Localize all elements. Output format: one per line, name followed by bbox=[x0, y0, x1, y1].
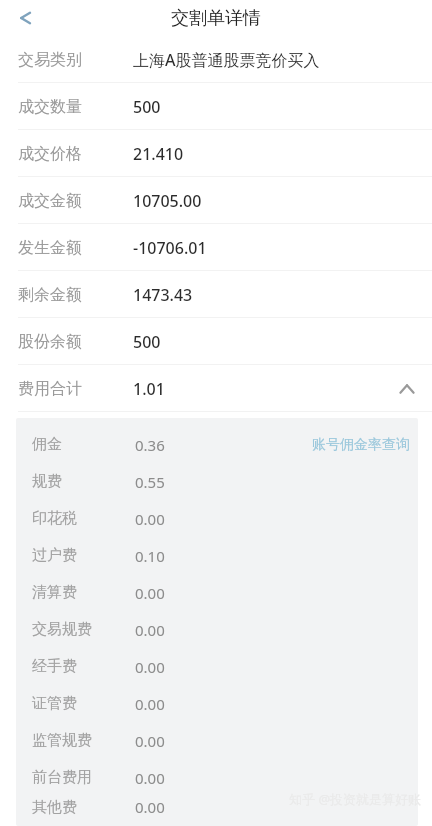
staticText: 0.55 bbox=[135, 472, 165, 492]
button[interactable]: 其他费 bbox=[16, 796, 418, 818]
button[interactable]: 账号佣金率查询 bbox=[312, 436, 410, 454]
staticText: 经手费 bbox=[32, 657, 77, 676]
button[interactable]: 剩余金额 bbox=[0, 271, 432, 318]
button[interactable]: 监管规费 bbox=[16, 722, 418, 759]
button[interactable]: 过户费 bbox=[16, 537, 418, 574]
staticText: 0.00 bbox=[135, 768, 165, 788]
staticText: 0.00 bbox=[135, 620, 165, 640]
staticText: 监管规费 bbox=[32, 731, 92, 750]
staticText: 发生金额 bbox=[18, 238, 82, 258]
button[interactable]: 股份余额 bbox=[0, 318, 432, 365]
staticText: 0.00 bbox=[135, 657, 165, 677]
button[interactable]: 印花税 bbox=[16, 500, 418, 537]
staticText: 0.36 bbox=[135, 435, 165, 455]
staticText: 账号佣金率查询 bbox=[312, 436, 410, 454]
staticText: 10705.00 bbox=[133, 190, 202, 212]
staticText: -10706.01 bbox=[133, 237, 207, 259]
staticText: 其他费 bbox=[32, 798, 77, 817]
staticText: 1.01 bbox=[133, 378, 165, 400]
staticText: 0.00 bbox=[135, 583, 165, 603]
button[interactable]: 前台费用 bbox=[16, 759, 418, 796]
staticText: 500 bbox=[133, 96, 161, 118]
staticText: 0.00 bbox=[135, 731, 165, 751]
staticText: 1473.43 bbox=[133, 284, 193, 306]
staticText: 剩余金额 bbox=[18, 285, 82, 305]
staticText: 成交金额 bbox=[18, 191, 82, 211]
staticText: 费用合计 bbox=[18, 379, 82, 399]
button[interactable]: 交易类别 bbox=[0, 36, 432, 83]
staticText: 印花税 bbox=[32, 509, 77, 528]
staticText: 佣金 bbox=[32, 435, 62, 454]
staticText: 交易类别 bbox=[18, 50, 82, 70]
button[interactable]: 发生金额 bbox=[0, 224, 432, 271]
staticText: 成交价格 bbox=[18, 144, 82, 164]
button[interactable]: 费用合计 bbox=[0, 365, 432, 412]
button[interactable]: 成交数量 bbox=[0, 83, 432, 130]
staticText: 前台费用 bbox=[32, 768, 92, 787]
button[interactable]: 经手费 bbox=[16, 648, 418, 685]
button[interactable]: Back bbox=[6, 0, 42, 36]
button[interactable]: 佣金 bbox=[16, 426, 418, 463]
staticText: 上海A股普通股票竞价买入 bbox=[133, 49, 320, 71]
button[interactable]: 清算费 bbox=[16, 574, 418, 611]
staticText: 21.410 bbox=[133, 143, 184, 165]
button[interactable]: 成交价格 bbox=[0, 130, 432, 177]
staticText: 交易规费 bbox=[32, 620, 92, 639]
staticText: 股份余额 bbox=[18, 332, 82, 352]
staticText: 500 bbox=[133, 331, 161, 353]
staticText: 交割单详情 bbox=[171, 7, 261, 30]
other: Collapse fees bbox=[396, 378, 418, 400]
button[interactable]: 成交金额 bbox=[0, 177, 432, 224]
button[interactable]: 规费 bbox=[16, 463, 418, 500]
staticText: 0.00 bbox=[135, 509, 165, 529]
staticText: 证管费 bbox=[32, 694, 77, 713]
staticText: 0.00 bbox=[135, 797, 165, 817]
staticText: 过户费 bbox=[32, 546, 77, 565]
staticText: 0.00 bbox=[135, 694, 165, 714]
staticText: 规费 bbox=[32, 472, 62, 491]
staticText: 知乎 @投资就是算好账 bbox=[289, 790, 422, 808]
staticText: 0.10 bbox=[135, 546, 165, 566]
staticText: 成交数量 bbox=[18, 97, 82, 117]
staticText: 清算费 bbox=[32, 583, 77, 602]
button[interactable]: 交易规费 bbox=[16, 611, 418, 648]
button[interactable]: 证管费 bbox=[16, 685, 418, 722]
